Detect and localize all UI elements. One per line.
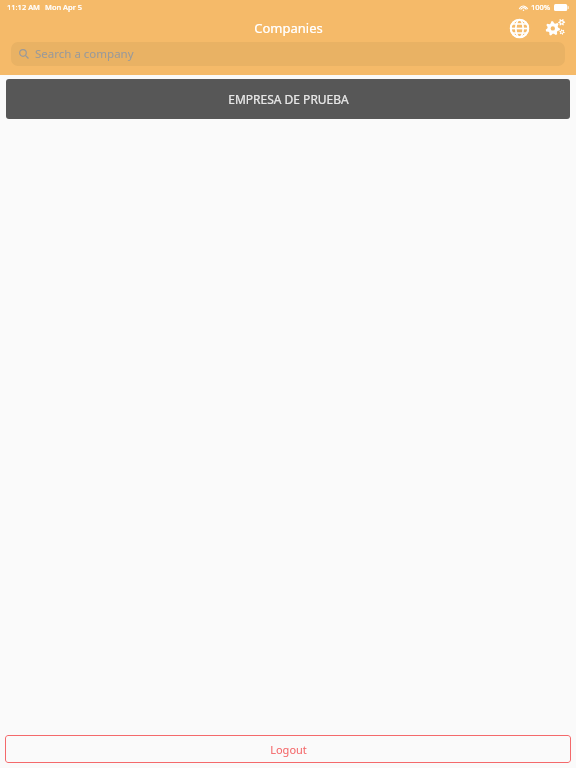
staticText: EMPRESA DE PRUEBA [228,91,349,107]
staticText: 11:12 AM [7,2,40,12]
staticText: 100% [531,2,551,12]
staticText: Logout [270,742,307,757]
staticText: Companies [254,19,323,37]
button[interactable]: Settings [542,15,568,41]
staticText: Mon Apr 5 [45,2,83,12]
button[interactable]: Search a company [11,42,565,66]
button[interactable]: EMPRESA DE PRUEBA [6,79,570,119]
button[interactable]: Logout [5,735,571,763]
button[interactable]: Language [506,15,532,41]
staticText: Search a company [35,46,134,62]
